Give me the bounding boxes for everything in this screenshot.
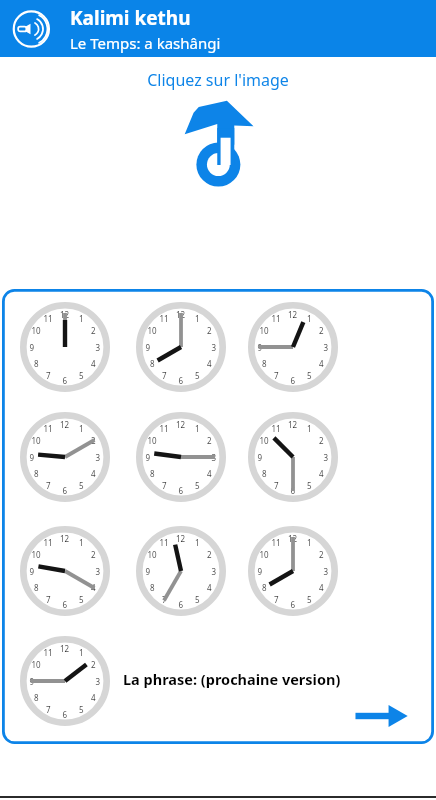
staticText: Le Temps: a kashângi [70,33,221,53]
staticText: Kalimi kethu [70,5,191,31]
button[interactable]: Tap the image [181,99,255,187]
button[interactable]: Next [352,699,410,733]
button[interactable]: Listen [0,0,436,57]
button[interactable]: La phrase: (prochaine version) [123,669,341,689]
button[interactable]: Listen [12,7,56,51]
staticText: Cliquez sur l'image [147,69,289,91]
staticText: La phrase: (prochaine version) [123,669,341,689]
